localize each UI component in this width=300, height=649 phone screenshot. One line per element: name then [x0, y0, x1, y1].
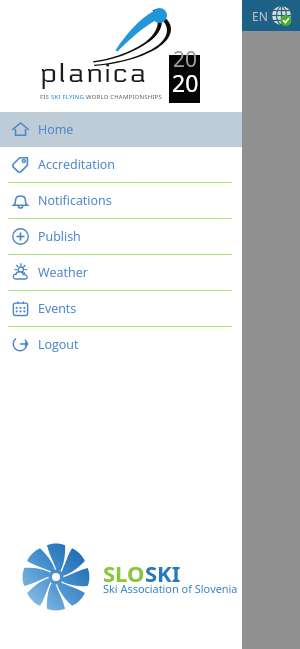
staticText: EN [252, 8, 268, 24]
staticText: SLO [103, 558, 145, 588]
button[interactable]: Weather [0, 255, 242, 290]
staticText: Notifications [38, 192, 112, 209]
staticText: Ski Association of Slovenia [103, 581, 238, 596]
staticText: SKI [145, 558, 181, 588]
staticText: Accreditation [38, 156, 116, 173]
button[interactable]: Home [0, 112, 242, 147]
staticText: 20 [172, 67, 199, 98]
staticText: Events [38, 300, 77, 317]
staticText: Logout [38, 336, 79, 353]
staticText: WORLD CHAMPIONSHIPS [86, 93, 162, 101]
button[interactable]: Accreditation [0, 147, 242, 182]
staticText: Publish [38, 228, 81, 245]
staticText: SKI FLYING [51, 93, 86, 101]
staticText: 20 [173, 45, 198, 74]
button[interactable]: Publish [0, 219, 242, 254]
button[interactable]: Change language [271, 5, 292, 26]
staticText: FIS [40, 93, 51, 101]
button[interactable]: Events [0, 291, 242, 326]
button[interactable]: Notifications [0, 183, 242, 218]
staticText: Weather [38, 264, 88, 281]
button[interactable]: Logout [0, 327, 242, 362]
staticText: Home [38, 121, 74, 138]
staticText: planica [40, 59, 149, 89]
